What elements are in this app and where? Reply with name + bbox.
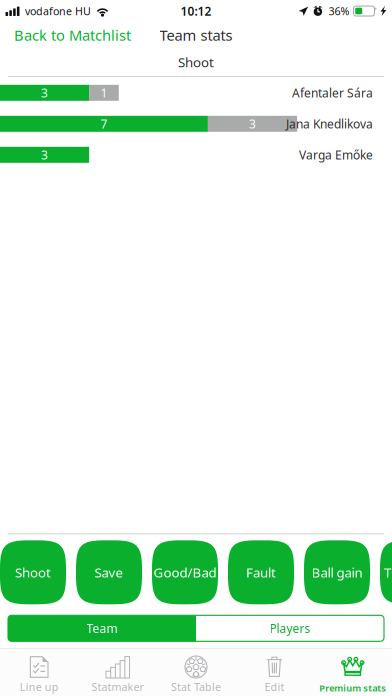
staticText: 36% — [328, 4, 349, 18]
staticText: 10:12 — [180, 3, 211, 19]
button[interactable]: Shoot — [0, 540, 66, 604]
staticText: Shoot — [15, 563, 51, 581]
button[interactable]: Back to Matchlist — [0, 21, 131, 49]
staticText: Back to Matchlist — [14, 25, 131, 45]
staticText: 3 — [41, 147, 48, 163]
staticText: Statmaker — [92, 680, 144, 694]
staticText: Players — [269, 620, 310, 636]
button[interactable]: Edit — [235, 649, 314, 696]
staticText: Turnover — [384, 563, 392, 581]
staticText: Fault — [246, 563, 276, 581]
button[interactable]: Players — [196, 615, 384, 641]
staticText: Edit — [264, 680, 284, 694]
staticText: Shoot — [178, 53, 214, 71]
staticText: Team — [86, 620, 117, 636]
button[interactable]: Save — [76, 540, 142, 604]
staticText: 1 — [100, 85, 107, 101]
staticText: Stat Table — [171, 680, 221, 694]
staticText: 7 — [100, 116, 107, 132]
button[interactable]: Premium stats — [314, 649, 392, 696]
button[interactable]: Statmaker — [78, 649, 157, 696]
button[interactable]: Turnover — [380, 540, 392, 604]
staticText: 3 — [249, 116, 256, 132]
button[interactable]: Ball gain — [304, 540, 370, 604]
staticText: Varga Emőke — [299, 147, 373, 163]
staticText: vodafone HU — [25, 4, 91, 18]
staticText: Good/Bad — [153, 563, 216, 581]
button[interactable]: Team — [8, 615, 196, 641]
staticText: 3 — [41, 85, 48, 101]
staticText: Premium stats — [319, 682, 386, 694]
button[interactable]: Line up — [0, 649, 78, 696]
staticText: Line up — [20, 680, 59, 694]
button[interactable]: Fault — [228, 540, 294, 604]
staticText: Afentaler Sára — [292, 85, 373, 101]
button[interactable]: Stat Table — [157, 649, 235, 696]
button[interactable]: Good/Bad — [152, 540, 218, 604]
staticText: Save — [94, 563, 123, 581]
staticText: Team stats — [159, 25, 232, 45]
staticText: Jana Knedlikova — [286, 116, 373, 132]
staticText: Ball gain — [311, 563, 362, 581]
